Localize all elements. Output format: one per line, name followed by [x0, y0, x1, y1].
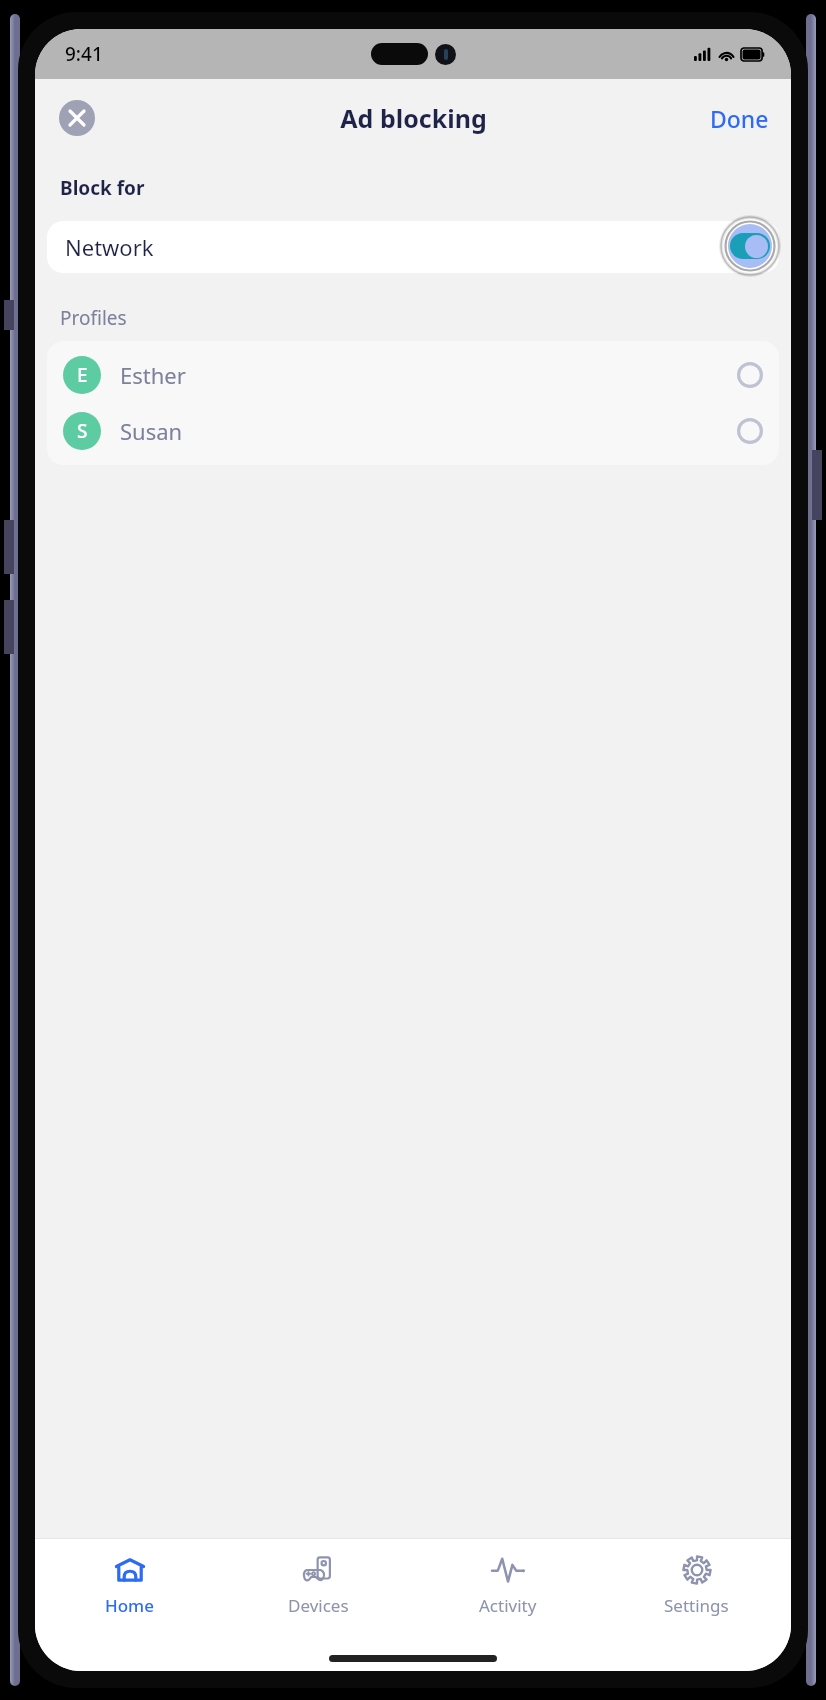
staticText: Block for: [60, 175, 145, 201]
button[interactable]: Home: [35, 1539, 224, 1635]
staticText: Done: [710, 103, 769, 134]
button[interactable]: Activity: [413, 1539, 602, 1635]
button[interactable]: Network: [47, 221, 779, 273]
staticText: Home: [105, 1594, 154, 1617]
staticText: Ad blocking: [340, 101, 487, 135]
staticText: Devices: [288, 1594, 349, 1617]
staticText: Settings: [664, 1594, 729, 1617]
button[interactable]: Devices: [224, 1539, 413, 1635]
staticText: E: [77, 362, 88, 388]
staticText: Susan: [120, 416, 183, 446]
button[interactable]: S: [47, 403, 779, 459]
staticText: S: [77, 418, 88, 444]
staticText: Profiles: [60, 305, 127, 331]
button[interactable]: Done: [688, 95, 791, 142]
button[interactable]: Settings: [602, 1539, 791, 1635]
staticText: Network: [65, 232, 154, 262]
staticText: Activity: [479, 1594, 537, 1617]
button[interactable]: Close: [59, 100, 95, 136]
staticText: Esther: [120, 360, 186, 390]
button[interactable]: E: [47, 347, 779, 403]
staticText: 9:41: [65, 41, 103, 67]
button[interactable]: Block for network toggle: [728, 224, 772, 268]
